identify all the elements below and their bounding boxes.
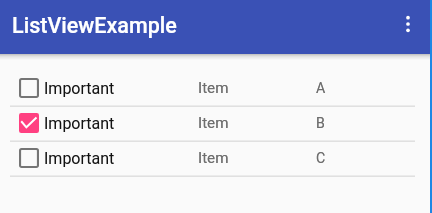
- staticText: ListViewExample: [12, 13, 177, 38]
- staticText: B: [316, 115, 325, 132]
- staticText: Important: [44, 149, 115, 168]
- staticText: C: [316, 150, 326, 167]
- button[interactable]: More options: [384, 0, 432, 48]
- staticText: Important: [44, 149, 115, 168]
- staticText: A: [316, 80, 326, 97]
- staticText: Important: [44, 114, 115, 133]
- staticText: Item: [198, 149, 229, 167]
- staticText: Item: [198, 149, 229, 167]
- staticText: Item: [198, 79, 229, 97]
- staticText: Important: [44, 114, 115, 133]
- staticText: B: [316, 115, 325, 132]
- staticText: Important: [44, 79, 115, 98]
- staticText: Important: [44, 79, 115, 98]
- staticText: Item: [198, 79, 229, 97]
- staticText: Item: [198, 114, 229, 132]
- staticText: C: [316, 150, 326, 167]
- staticText: Item: [198, 114, 229, 132]
- staticText: A: [316, 80, 326, 97]
- button[interactable]: Important: [0, 71, 432, 105]
- button[interactable]: Important: [0, 106, 432, 140]
- button[interactable]: Important: [0, 141, 432, 175]
